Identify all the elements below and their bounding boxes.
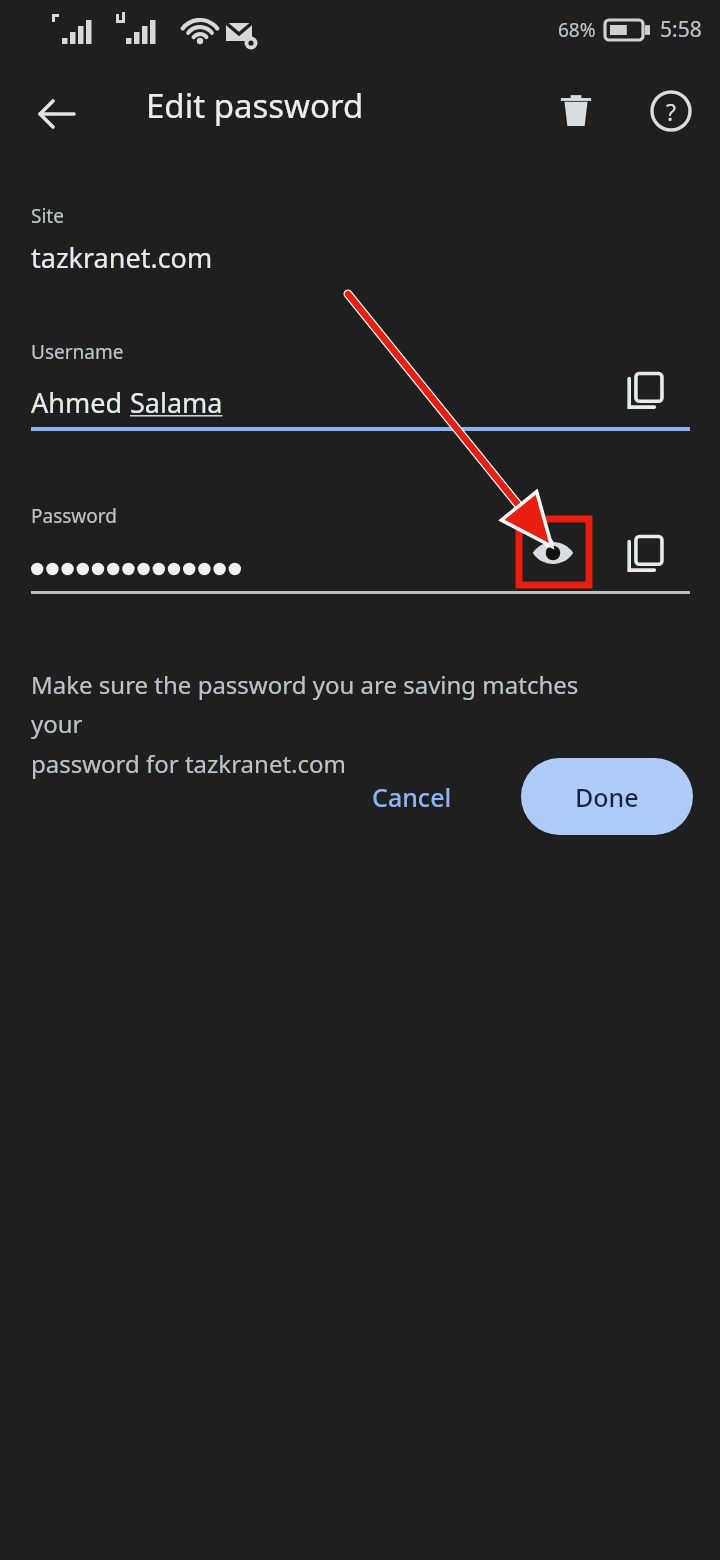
button[interactable]: Cancel (346, 766, 478, 828)
staticText: Done (575, 780, 639, 814)
button[interactable]: Done (521, 758, 693, 835)
staticText: Cancel (372, 780, 452, 814)
button[interactable]: Help (635, 75, 707, 147)
staticText: Ahmed (31, 384, 130, 421)
staticText: Password (31, 503, 117, 529)
button[interactable]: Back (20, 78, 92, 150)
button[interactable]: Copy (612, 358, 680, 426)
staticText: Salama (130, 384, 223, 421)
staticText: ? (666, 96, 676, 127)
staticText: tazkranet.com (31, 239, 213, 276)
button[interactable]: Delete (540, 75, 612, 147)
staticText: Make sure the password you are saving ma… (31, 668, 631, 780)
staticText: 5:58 (660, 15, 702, 44)
button[interactable]: Show password (519, 519, 587, 587)
staticText: Edit password (146, 83, 364, 128)
staticText: Username (31, 339, 124, 365)
staticText: 68% (558, 17, 596, 43)
button[interactable]: Copy (612, 521, 680, 589)
staticText: Site (31, 203, 64, 229)
